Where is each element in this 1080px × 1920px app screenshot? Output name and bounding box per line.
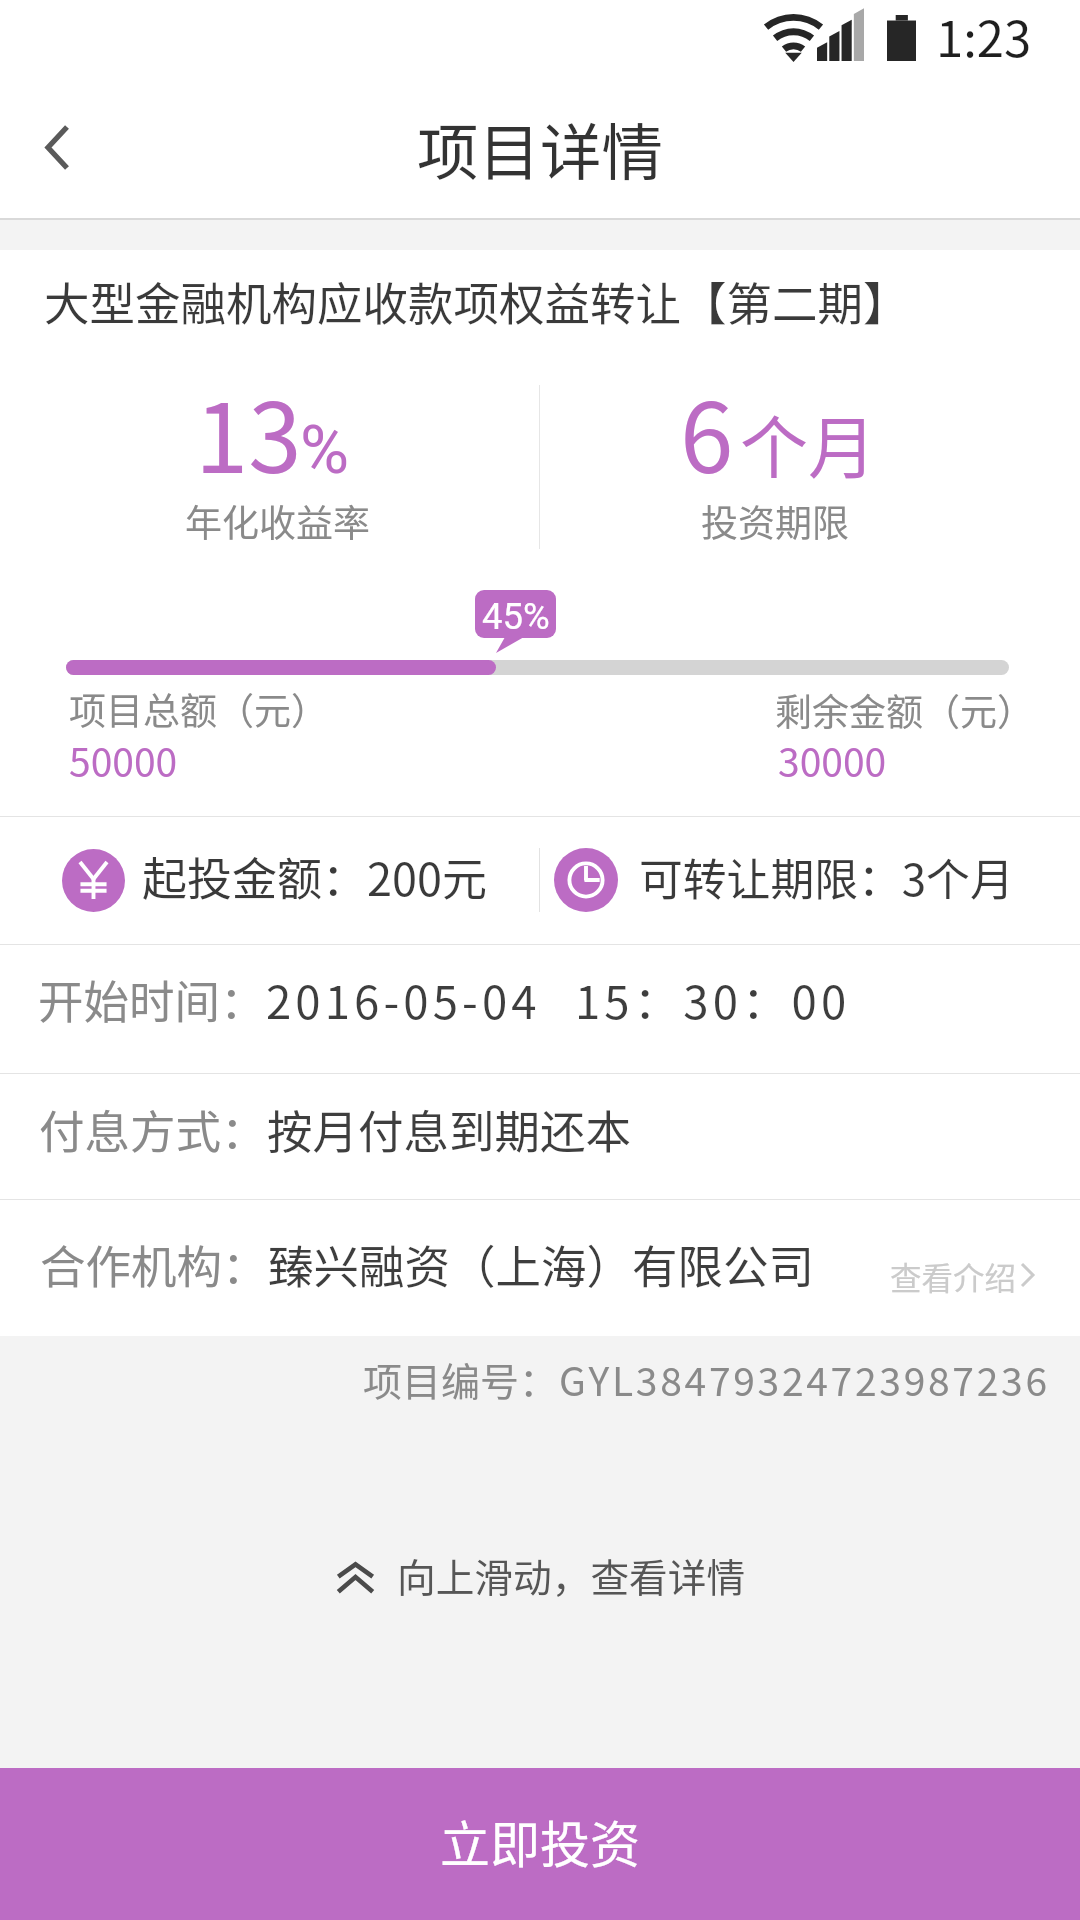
button[interactable]: 合作机构：: [0, 1199, 1080, 1336]
staticText: 13: [195, 362, 302, 501]
staticText: 查看介绍: [890, 1253, 1017, 1299]
staticText: 付息方式：: [39, 1096, 267, 1162]
staticText: 向上滑动，查看详情: [397, 1547, 746, 1603]
staticText: 50000: [69, 732, 178, 788]
staticText: 大型金融机构应收款项权益转让【第二期】: [44, 268, 909, 334]
staticText: 开始时间：: [38, 966, 266, 1032]
staticText: 45%: [482, 595, 550, 638]
staticText: 15：30：00: [575, 966, 851, 1032]
staticText: 30000: [778, 732, 887, 788]
staticText: 臻兴融资（上海）有限公司: [268, 1231, 815, 1297]
staticText: 可转让期限：3个月: [639, 845, 1014, 908]
staticText: 按月付息到期还本: [267, 1096, 632, 1162]
staticText: 2016-05-04: [266, 966, 541, 1032]
staticText: 项目编号：: [363, 1351, 559, 1407]
button[interactable]: Back: [0, 76, 110, 218]
staticText: 剩余金额（元）: [775, 683, 1034, 737]
staticText: 项目总额（元）: [69, 682, 328, 736]
staticText: 立即投资: [440, 1805, 640, 1877]
staticText: GYL38479324723987236: [559, 1351, 1050, 1407]
staticText: %: [300, 411, 350, 490]
staticText: 年化收益率: [185, 494, 370, 548]
button[interactable]: 立即投资: [0, 1768, 1080, 1920]
staticText: 投资期限: [701, 494, 849, 548]
staticText: 合作机构：: [40, 1231, 268, 1297]
staticText: 个月: [740, 394, 877, 492]
staticText: 6: [680, 362, 734, 501]
staticText: 起投金额：200元: [142, 844, 487, 909]
staticText: 1:23: [936, 0, 1032, 71]
staticText: 项目详情: [417, 104, 664, 193]
